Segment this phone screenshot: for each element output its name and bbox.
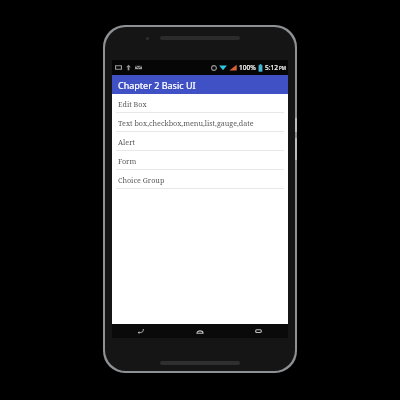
- button[interactable]: Back: [112, 324, 170, 338]
- button[interactable]: Edit Box: [112, 94, 288, 113]
- staticText: Text box,checkbox,menu,list,gauge,date: [118, 118, 254, 128]
- staticText: Choice Group: [118, 175, 165, 185]
- staticText: Edit Box: [118, 99, 147, 109]
- button[interactable]: Form: [112, 151, 288, 170]
- staticText: 100%: [239, 63, 256, 72]
- button[interactable]: Alert: [112, 132, 288, 151]
- staticText: Chapter 2 Basic UI: [118, 79, 196, 91]
- button[interactable]: Recent apps: [229, 324, 288, 338]
- staticText: PM: [279, 65, 286, 71]
- staticText: 5:12: [265, 63, 278, 72]
- staticText: Alert: [118, 137, 136, 147]
- button[interactable]: Chapter 2 Basic UI: [112, 75, 288, 94]
- staticText: Form: [118, 156, 137, 166]
- button[interactable]: Choice Group: [112, 170, 288, 189]
- button[interactable]: Home: [170, 324, 229, 338]
- button[interactable]: Text box,checkbox,menu,list,gauge,date: [112, 113, 288, 132]
